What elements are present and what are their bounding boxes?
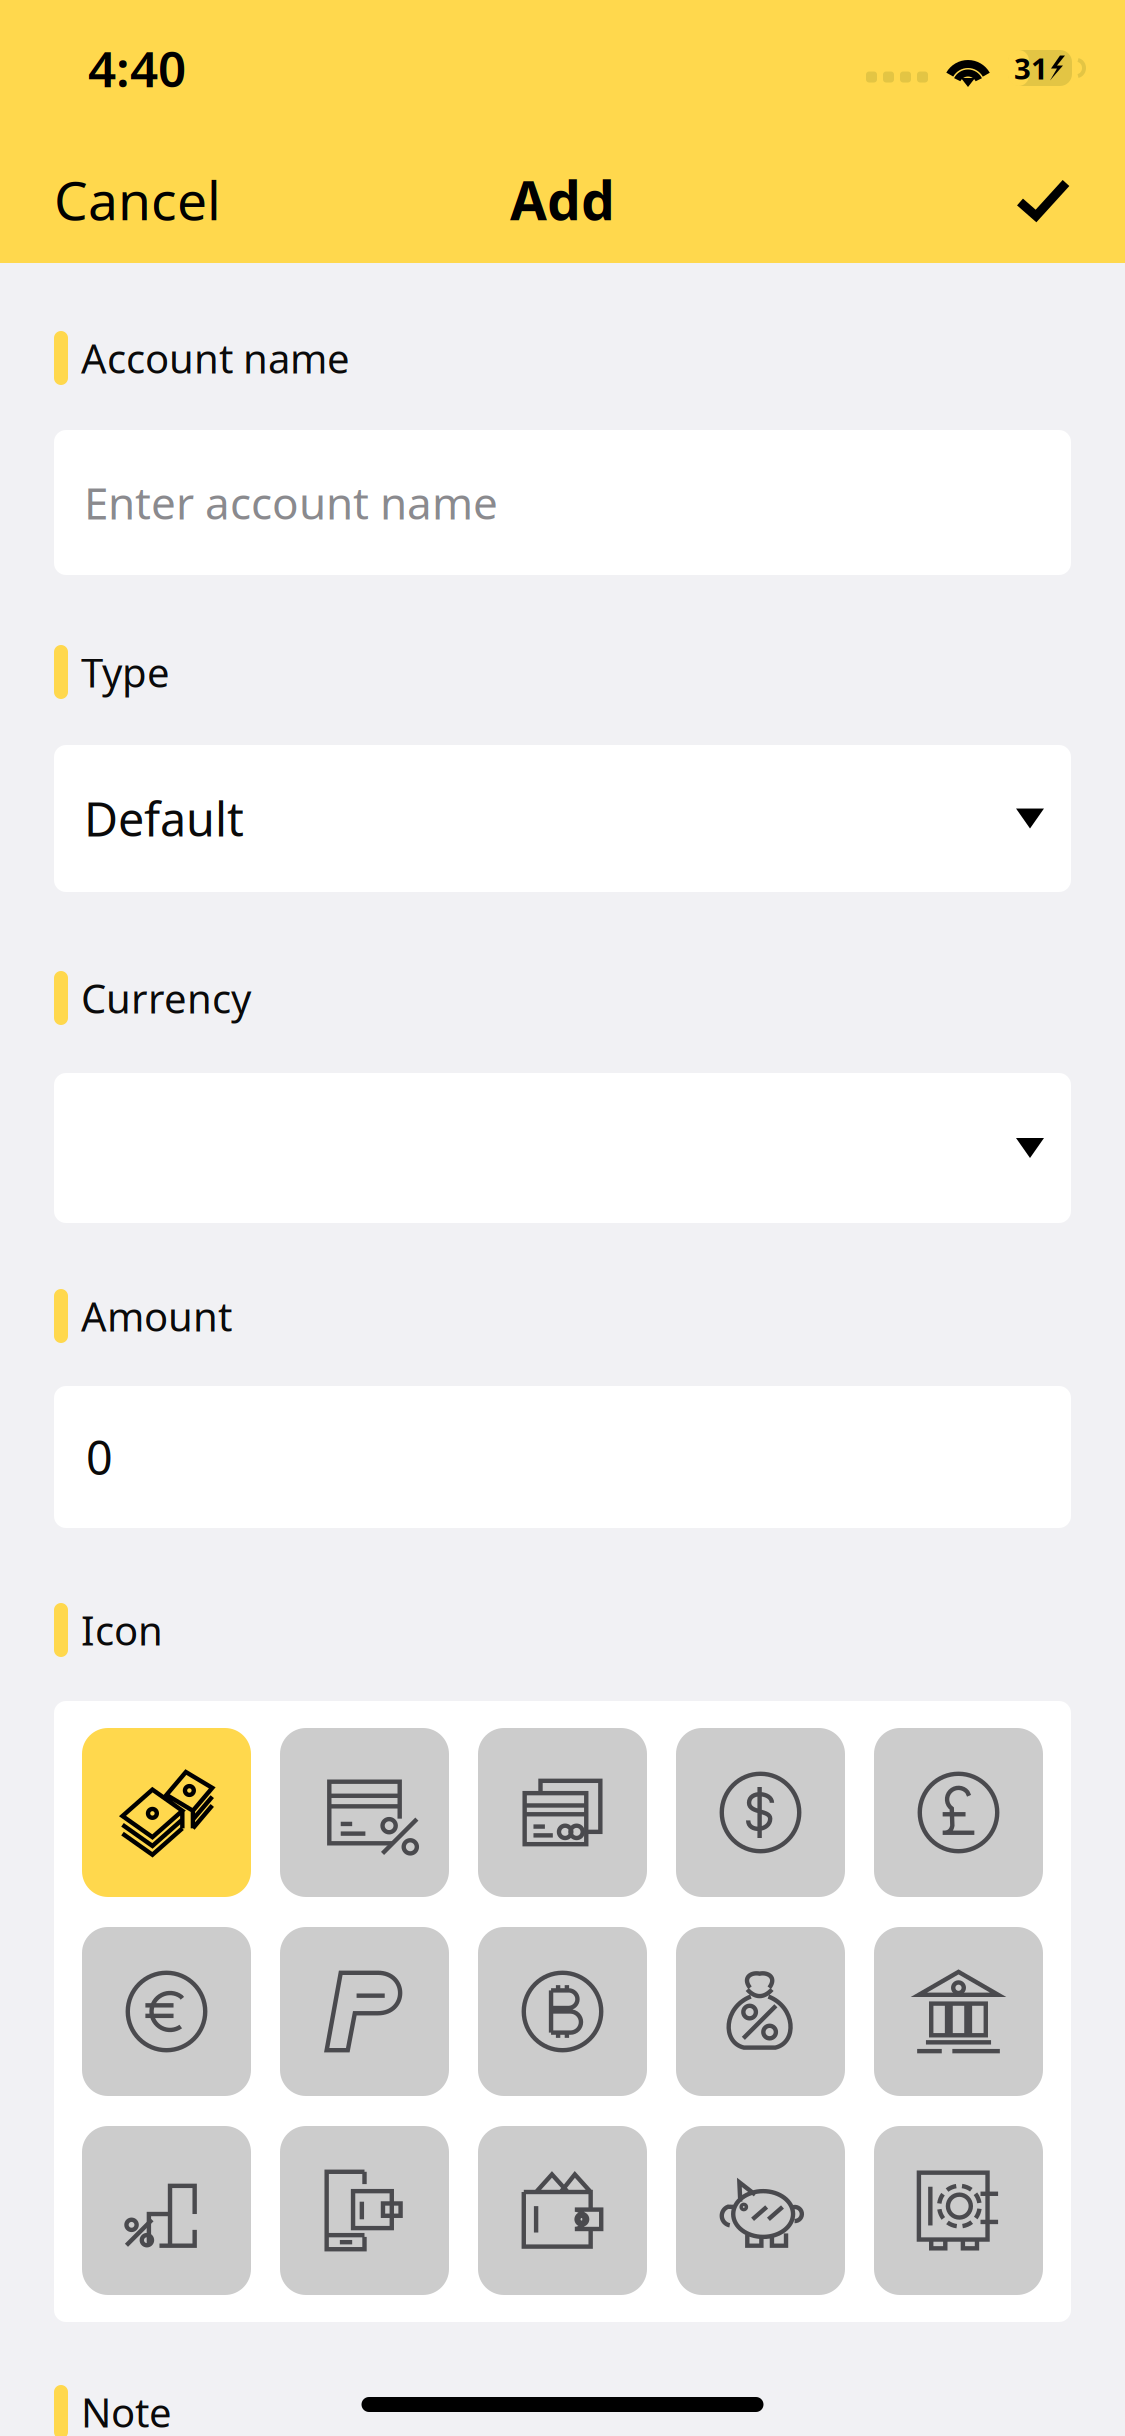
button[interactable]: Bitcoin	[478, 1927, 647, 2096]
button[interactable]: Mobile payment	[280, 2126, 449, 2295]
staticText: Type	[81, 645, 170, 698]
button[interactable]: Credit card with discount	[280, 1728, 449, 1897]
staticText: 0	[86, 1426, 113, 1488]
staticText: 31	[1014, 48, 1048, 87]
button[interactable]: Pound	[874, 1728, 1043, 1897]
button[interactable]: Cards	[478, 1728, 647, 1897]
staticText: Amount	[81, 1289, 232, 1342]
button[interactable]: Cancel	[0, 134, 251, 265]
button[interactable]: Wallet	[478, 2126, 647, 2295]
staticText: Note	[81, 2385, 172, 2436]
button[interactable]: Money bag	[676, 1927, 845, 2096]
button[interactable]: Dollar	[676, 1728, 845, 1897]
staticText: Add	[510, 164, 615, 235]
button[interactable]: Piggy bank	[676, 2126, 845, 2295]
button[interactable]: Save	[975, 134, 1125, 265]
staticText: Icon	[81, 1603, 163, 1656]
button[interactable]: Safe	[874, 2126, 1043, 2295]
button[interactable]: Euro	[82, 1927, 251, 2096]
button[interactable]: Chart	[82, 2126, 251, 2295]
staticText: Currency	[81, 971, 251, 1024]
staticText: Enter account name	[84, 473, 498, 532]
button[interactable]: Bank	[874, 1927, 1043, 2096]
button[interactable]: Cash	[82, 1728, 251, 1897]
staticText: 4:40	[88, 35, 186, 101]
staticText: Default	[84, 787, 244, 849]
button[interactable]: PayPal	[280, 1927, 449, 2096]
staticText: Account name	[81, 331, 350, 384]
staticText: Cancel	[54, 164, 221, 235]
